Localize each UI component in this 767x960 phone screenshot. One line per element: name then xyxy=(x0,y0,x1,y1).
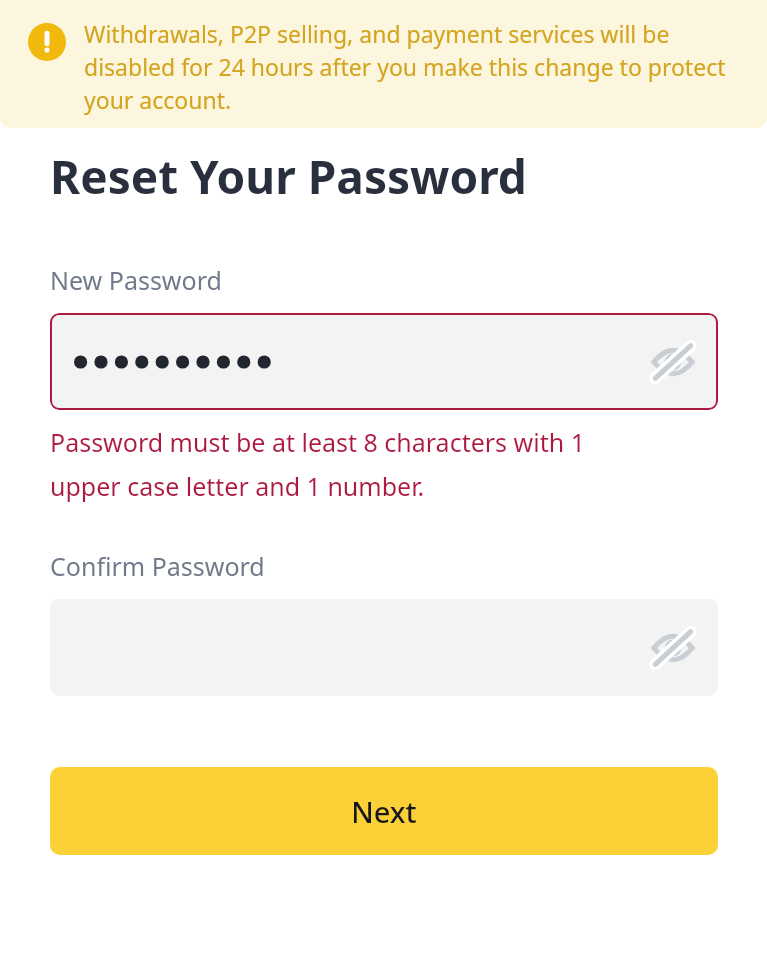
button[interactable]: Show confirm password xyxy=(649,624,697,672)
staticText: Next xyxy=(351,792,417,831)
button[interactable]: Show confirm password xyxy=(50,599,718,696)
staticText: Confirm Password xyxy=(50,549,265,583)
staticText: Withdrawals, P2P selling, and payment se… xyxy=(84,18,739,116)
staticText: Reset Your Password xyxy=(50,145,527,208)
staticText: New Password xyxy=(50,263,222,297)
button[interactable]: Show password xyxy=(50,313,718,410)
button[interactable]: Show password xyxy=(649,338,697,386)
staticText: Password must be at least 8 characters w… xyxy=(50,425,657,504)
button[interactable]: Next xyxy=(50,767,718,855)
